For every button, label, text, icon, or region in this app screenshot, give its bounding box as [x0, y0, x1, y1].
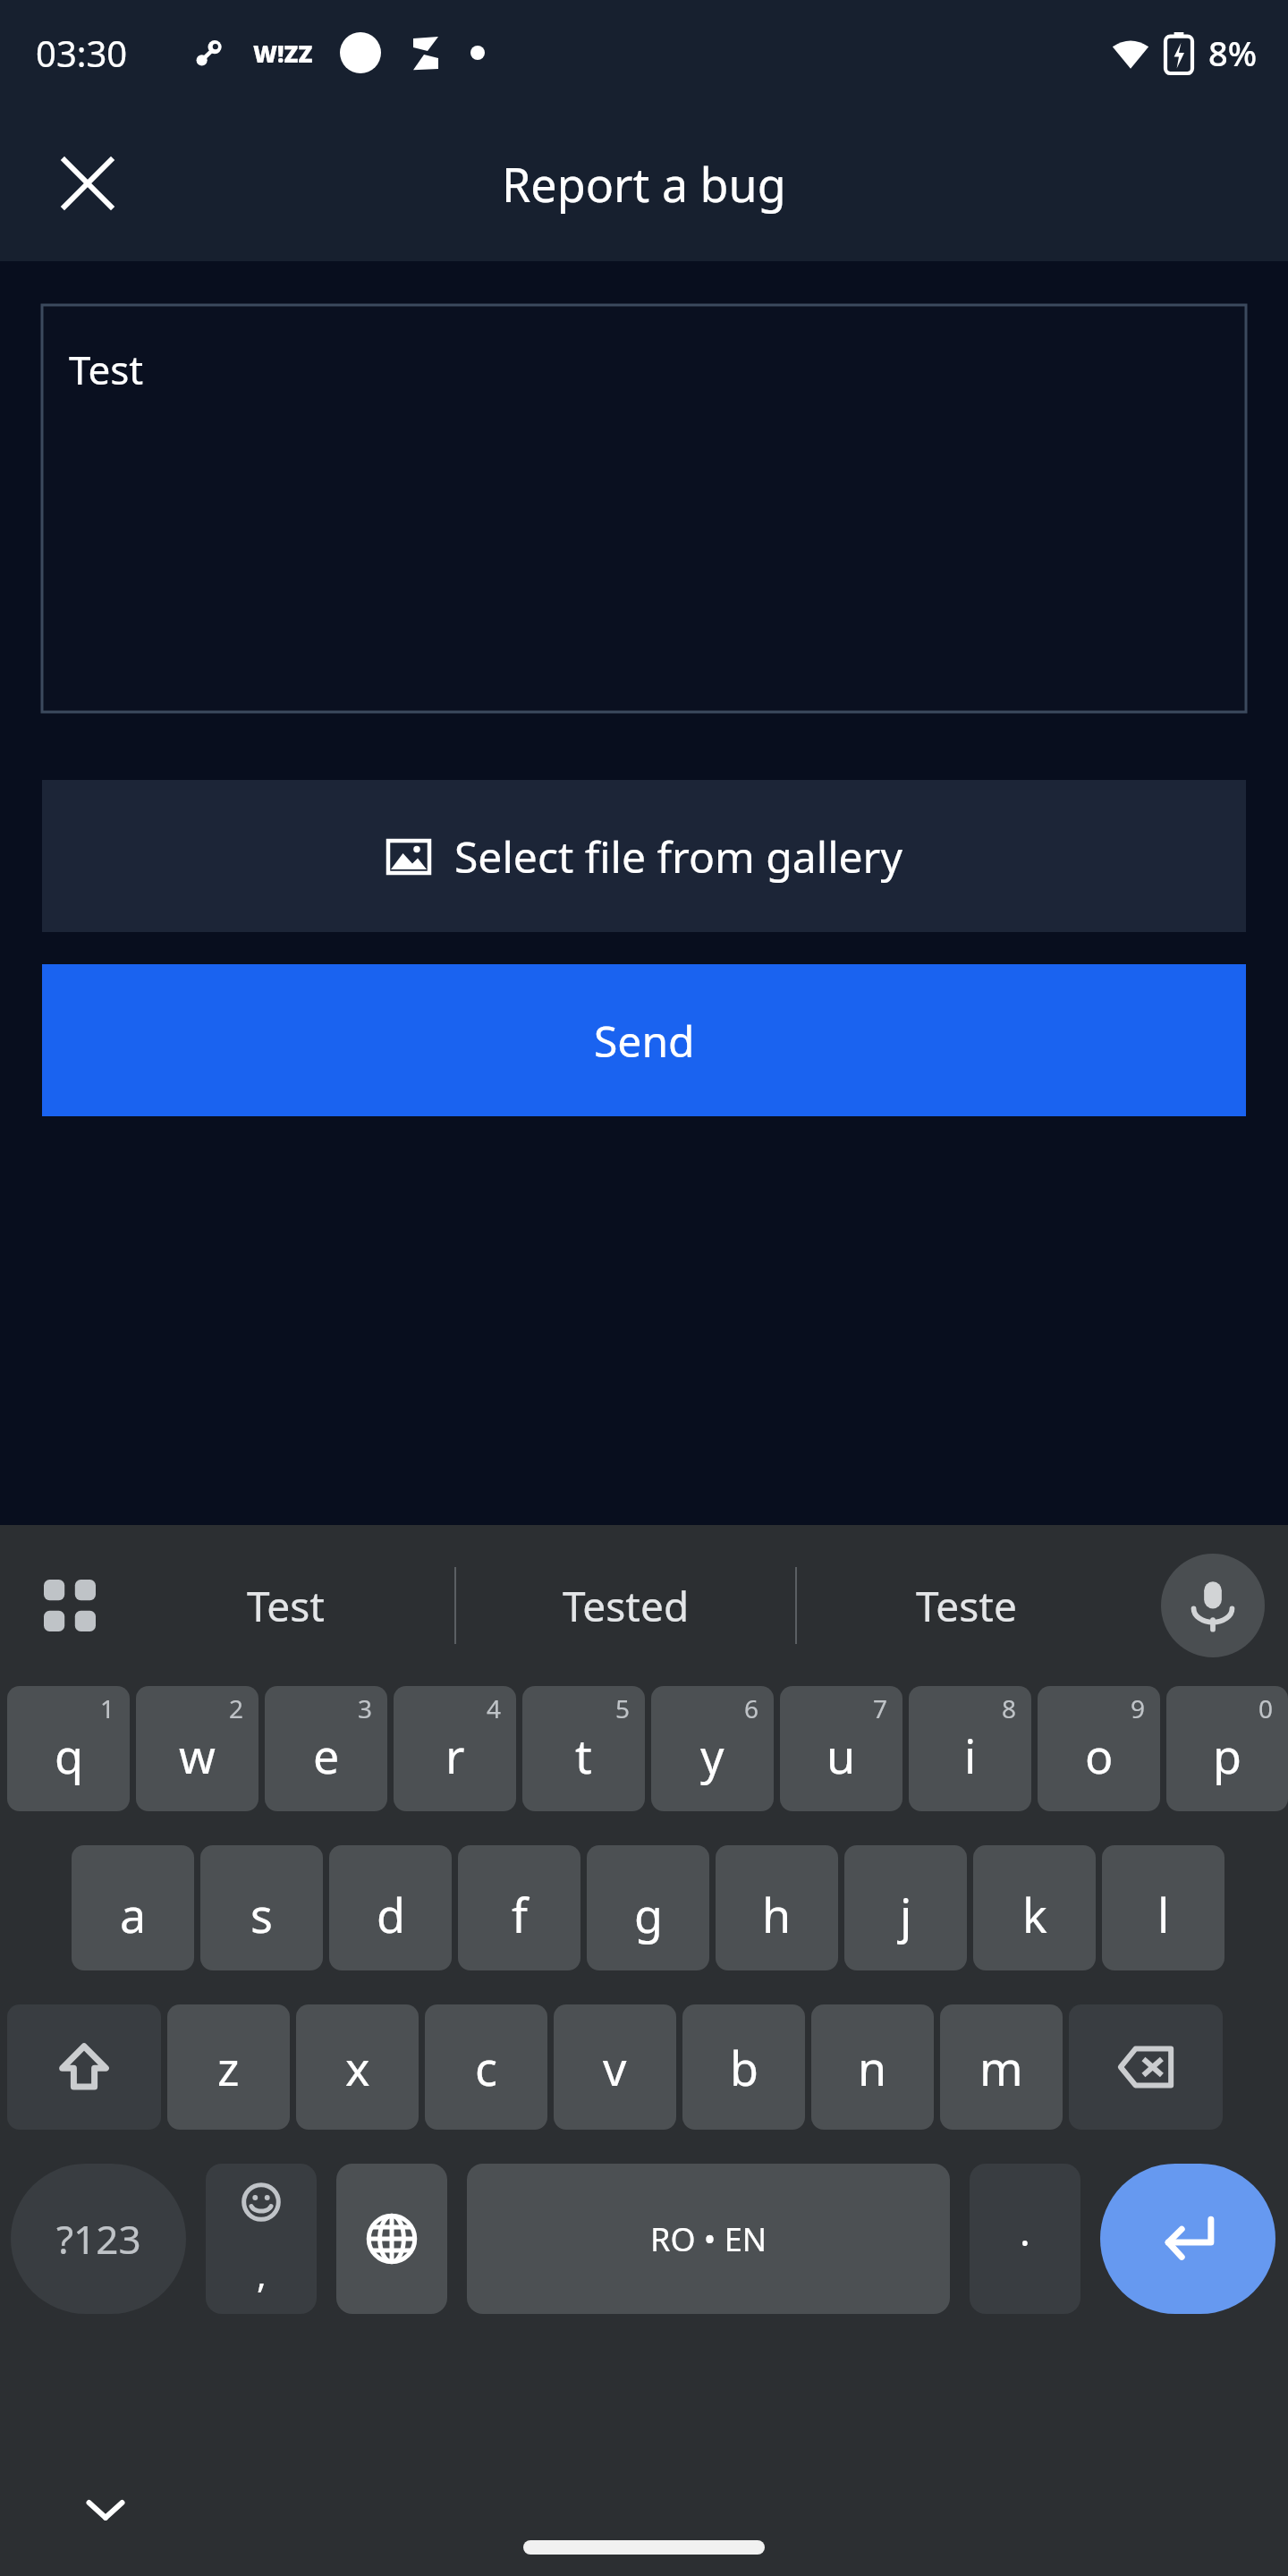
staticText: 4	[487, 1691, 502, 1725]
staticText: 3	[358, 1691, 373, 1725]
button[interactable]: 9	[1038, 1686, 1160, 1811]
button[interactable]: 0	[1166, 1686, 1288, 1811]
staticText: t	[575, 1724, 592, 1787]
button[interactable]: Teste	[797, 1525, 1136, 1686]
button[interactable]: ?123	[11, 2164, 186, 2314]
button[interactable]: .	[970, 2164, 1080, 2314]
staticText: d	[377, 1883, 405, 1946]
button[interactable]: Close	[47, 142, 129, 225]
staticText: ,	[257, 2250, 267, 2298]
staticText: 6	[744, 1691, 759, 1725]
button[interactable]: Send	[42, 964, 1246, 1116]
staticText: 03:30	[36, 29, 128, 77]
button[interactable]: z	[167, 2004, 290, 2130]
staticText: k	[1022, 1883, 1047, 1946]
button[interactable]: 7	[780, 1686, 902, 1811]
staticText: f	[512, 1883, 528, 1946]
staticText: p	[1213, 1724, 1241, 1787]
button[interactable]: s	[200, 1845, 323, 1970]
staticText: y	[700, 1724, 724, 1787]
button[interactable]: 2	[136, 1686, 258, 1811]
staticText: 1	[100, 1691, 115, 1725]
staticText: Test	[69, 343, 144, 396]
staticText: Select file from gallery	[454, 827, 902, 885]
button[interactable]: Test	[116, 1525, 454, 1686]
button[interactable]: Voice input	[1161, 1554, 1265, 1657]
button[interactable]: Select file from gallery	[42, 780, 1246, 932]
button[interactable]: Test	[42, 305, 1246, 712]
staticText: RO • EN	[650, 2217, 767, 2261]
staticText: 9	[1131, 1691, 1146, 1725]
staticText: 0	[1258, 1691, 1274, 1725]
button[interactable]: Tested	[456, 1525, 795, 1686]
button[interactable]: 6	[651, 1686, 774, 1811]
button[interactable]: k	[973, 1845, 1096, 1970]
button[interactable]: 1	[7, 1686, 130, 1811]
button[interactable]: Change language	[336, 2164, 447, 2314]
staticText: 2	[229, 1691, 244, 1725]
button[interactable]: m	[940, 2004, 1063, 2130]
staticText: m	[979, 2036, 1023, 2099]
staticText: r	[445, 1724, 465, 1787]
button[interactable]: f	[458, 1845, 580, 1970]
button[interactable]: Backspace	[1069, 2004, 1223, 2130]
button[interactable]: 3	[265, 1686, 387, 1811]
button[interactable]: Emoji and comma	[206, 2164, 317, 2314]
button[interactable]: 4	[394, 1686, 516, 1811]
button[interactable]: 8	[909, 1686, 1031, 1811]
staticText: j	[900, 1883, 912, 1946]
button[interactable]: j	[844, 1845, 967, 1970]
staticText: Tested	[563, 1578, 690, 1634]
staticText: 7	[873, 1691, 888, 1725]
staticText: u	[826, 1724, 856, 1787]
button[interactable]: Hide keyboard	[70, 2473, 141, 2545]
button[interactable]: d	[329, 1845, 452, 1970]
staticText: c	[475, 2036, 497, 2099]
button[interactable]: l	[1102, 1845, 1224, 1970]
staticText: z	[217, 2036, 240, 2099]
button[interactable]: 5	[522, 1686, 645, 1811]
button[interactable]: Enter	[1100, 2164, 1275, 2314]
staticText: e	[313, 1724, 340, 1787]
button[interactable]: x	[296, 2004, 419, 2130]
staticText: Test	[247, 1578, 325, 1634]
staticText: s	[250, 1883, 273, 1946]
button[interactable]: h	[716, 1845, 838, 1970]
staticText: Teste	[916, 1578, 1017, 1634]
staticText: q	[55, 1724, 83, 1787]
staticText: v	[603, 2036, 627, 2099]
staticText: b	[730, 2036, 758, 2099]
staticText: g	[634, 1883, 663, 1946]
staticText: Report a bug	[502, 152, 786, 216]
button[interactable]: n	[811, 2004, 934, 2130]
staticText: .	[1020, 2204, 1030, 2258]
staticText: ?123	[56, 2212, 141, 2266]
button[interactable]: v	[554, 2004, 676, 2130]
button[interactable]: Keyboard menu	[25, 1561, 114, 1650]
button[interactable]: g	[587, 1845, 709, 1970]
staticText: n	[858, 2036, 887, 2099]
staticText: l	[1157, 1883, 1170, 1946]
staticText: 5	[615, 1691, 631, 1725]
button[interactable]: a	[72, 1845, 194, 1970]
staticText: w	[179, 1724, 216, 1787]
staticText: o	[1085, 1724, 1114, 1787]
button[interactable]: Shift	[7, 2004, 161, 2130]
staticText: h	[762, 1883, 792, 1946]
button[interactable]: RO • EN	[467, 2164, 950, 2314]
staticText: a	[120, 1883, 147, 1946]
staticText: i	[964, 1724, 977, 1787]
button[interactable]: b	[682, 2004, 805, 2130]
staticText: W!ZZ	[253, 38, 313, 69]
staticText: 8%	[1208, 30, 1258, 76]
staticText: x	[345, 2036, 370, 2099]
button[interactable]: c	[425, 2004, 547, 2130]
staticText: 8	[1002, 1691, 1017, 1725]
staticText: Send	[594, 1012, 695, 1070]
